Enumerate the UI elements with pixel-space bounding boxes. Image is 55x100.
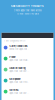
- staticText: I am diagnosed with: [4, 39, 25, 42]
- staticText: Microphone: [9, 78, 20, 81]
- staticText: to your sensitive data: [16, 12, 38, 15]
- button[interactable]: Wireless: [1, 86, 53, 97]
- button[interactable]: Safety conditions: [1, 42, 53, 53]
- staticText: Apps that can use your device location: [9, 70, 30, 72]
- button[interactable]: Microphone: [1, 75, 53, 86]
- staticText: Check apps that have access: [13, 9, 41, 12]
- button[interactable]: Phone: [1, 53, 53, 64]
- staticText: Location sharing: [9, 67, 26, 70]
- staticText: Apps that can record audio on this phone: [9, 81, 30, 83]
- staticText: Safety conditions: [9, 45, 27, 48]
- staticText: Wireless: [9, 89, 18, 92]
- staticText: Phone: [9, 56, 15, 59]
- staticText: Apps that can use wireless data: [9, 92, 30, 94]
- staticText: Apps that can make and manage phone call…: [9, 59, 30, 61]
- staticText: SEE SECURITY THREATS: [11, 5, 44, 7]
- button[interactable]: Location sharing: [1, 64, 53, 75]
- staticText: Check the apps with access to your data: [9, 48, 30, 50]
